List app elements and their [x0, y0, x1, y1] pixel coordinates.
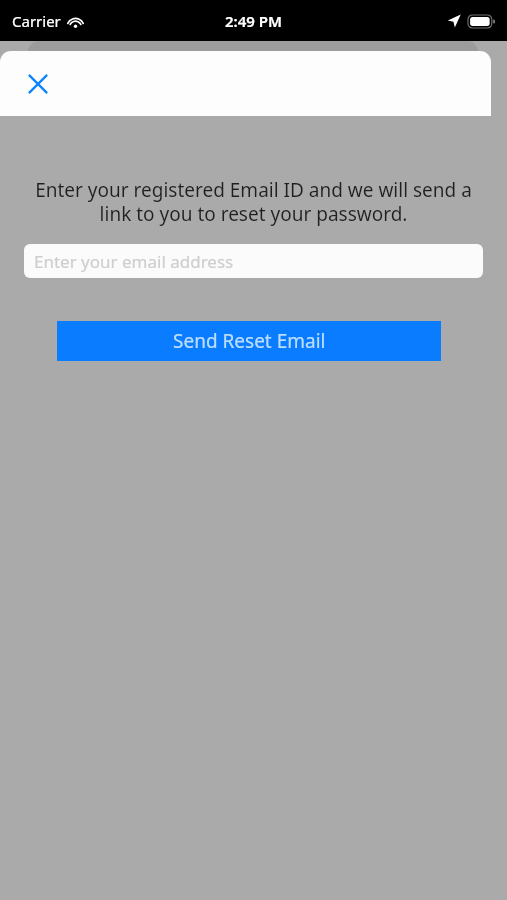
staticText: 2:49 PM: [225, 11, 282, 31]
staticText: Enter your email address: [34, 250, 234, 273]
staticText: Carrier: [12, 11, 61, 31]
button[interactable]: Close: [14, 60, 62, 108]
staticText: Enter your registered Email ID and we wi…: [22, 177, 485, 226]
button[interactable]: Enter your email address: [24, 244, 483, 278]
staticText: Send Reset Email: [173, 328, 326, 354]
button[interactable]: Send Reset Email: [57, 321, 441, 361]
